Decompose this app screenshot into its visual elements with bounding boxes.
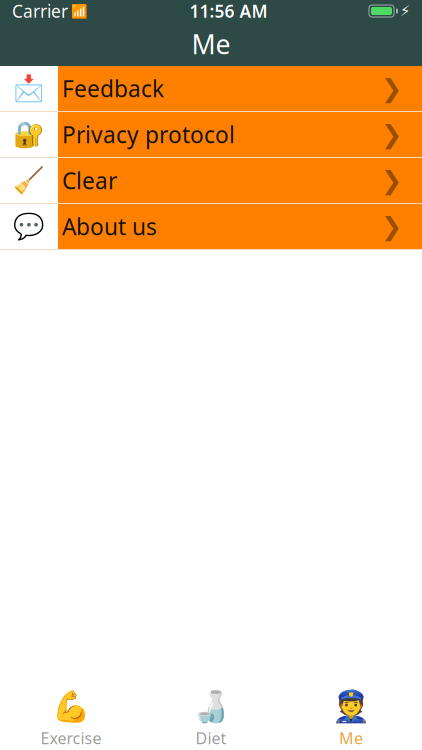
staticText: Carrier	[12, 0, 68, 22]
staticText: ❯	[381, 120, 402, 149]
staticText: Exercise	[40, 727, 101, 749]
staticText: 🧹	[13, 166, 45, 195]
staticText: 11:56 AM	[189, 0, 267, 22]
staticText: About us	[62, 211, 157, 241]
staticText: ❯	[381, 74, 402, 103]
button[interactable]: 🔐	[0, 112, 422, 157]
staticText: ❯	[381, 166, 402, 195]
staticText: Me	[191, 26, 230, 62]
staticText: Feedback	[62, 73, 164, 103]
button[interactable]: 📩	[0, 66, 422, 111]
staticText: Clear	[62, 165, 117, 195]
staticText: 💪	[52, 689, 90, 724]
staticText: 🔐	[13, 120, 45, 149]
staticText: 👮	[332, 689, 370, 724]
staticText: ⚡︎	[400, 3, 410, 19]
button[interactable]: 👮	[281, 688, 421, 750]
staticText: Diet	[195, 727, 226, 749]
staticText: Me	[339, 727, 363, 749]
button[interactable]: 🍶	[141, 688, 281, 750]
staticText: 💬	[13, 212, 45, 241]
staticText: 🍶	[192, 689, 230, 724]
button[interactable]: 💬	[0, 204, 422, 249]
staticText: Privacy protocol	[62, 119, 235, 149]
staticText: 📩	[13, 74, 45, 103]
staticText: 📶	[68, 2, 88, 20]
staticText: ❯	[381, 212, 402, 241]
button[interactable]: 🧹	[0, 158, 422, 203]
button[interactable]: 💪	[1, 688, 141, 750]
